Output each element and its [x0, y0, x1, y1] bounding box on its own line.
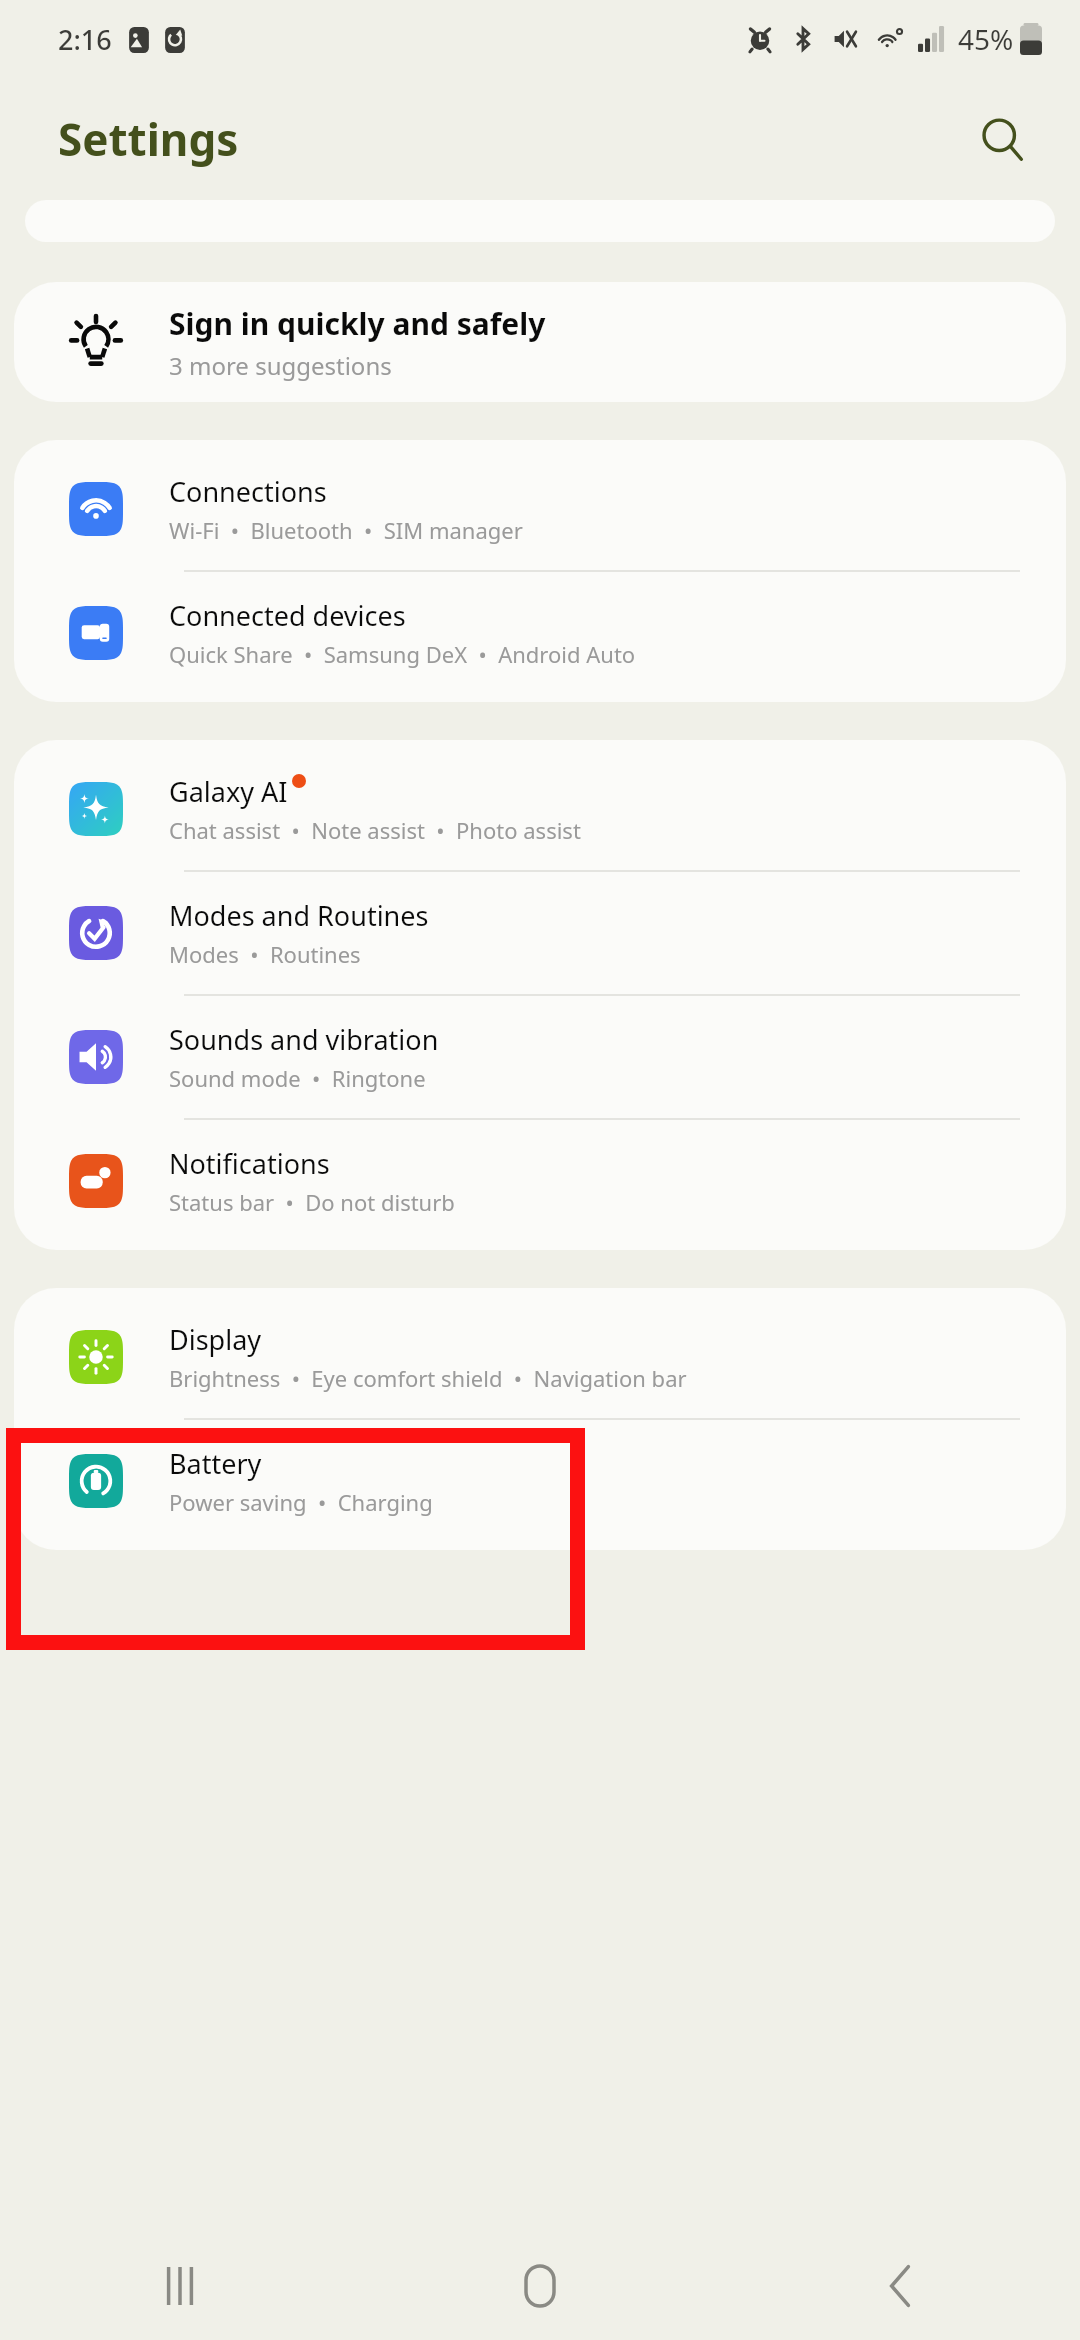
button[interactable]: Back	[720, 2232, 1080, 2340]
staticText: Modes and Routines	[169, 897, 429, 934]
staticText: 45%	[958, 20, 1014, 58]
button[interactable]: Battery	[14, 1420, 1066, 1542]
staticText: Notifications	[169, 1145, 330, 1182]
staticText: Modes • Routines	[169, 939, 361, 969]
staticText: Brightness • Eye comfort shield • Naviga…	[169, 1363, 687, 1393]
staticText: Chat assist • Note assist • Photo assist	[169, 815, 581, 845]
staticText: Status bar • Do not disturb	[169, 1187, 455, 1217]
staticText: Quick Share • Samsung DeX • Android Auto	[169, 639, 636, 669]
staticText: Sign in quickly and safely	[169, 303, 546, 344]
button[interactable]: Sounds and vibration	[14, 996, 1066, 1118]
staticText: 3 more suggestions	[169, 349, 392, 382]
staticText: Sounds and vibration	[169, 1021, 439, 1058]
button[interactable]: Connections	[14, 448, 1066, 570]
button[interactable]: Display	[14, 1296, 1066, 1418]
staticText: Sound mode • Ringtone	[169, 1063, 426, 1093]
button[interactable]: Modes and Routines	[14, 872, 1066, 994]
staticText: Galaxy AI	[169, 773, 288, 810]
staticText: Connections	[169, 473, 327, 510]
button[interactable]: Connected devices	[14, 572, 1066, 694]
staticText: Battery	[169, 1445, 262, 1482]
button[interactable]: Galaxy AI	[14, 748, 1066, 870]
staticText: Connected devices	[169, 597, 406, 634]
staticText: Display	[169, 1321, 262, 1358]
button[interactable]: Sign in quickly and safely	[14, 282, 1066, 402]
button[interactable]: Recents	[0, 2232, 360, 2340]
staticText: Settings	[58, 109, 239, 169]
staticText: 2:16	[58, 21, 112, 58]
staticText: Wi-Fi • Bluetooth • SIM manager	[169, 515, 523, 545]
button[interactable]: Notifications	[14, 1120, 1066, 1242]
staticText: Power saving • Charging	[169, 1487, 433, 1517]
button[interactable]: Home	[360, 2232, 720, 2340]
button[interactable]: Search	[966, 103, 1038, 175]
